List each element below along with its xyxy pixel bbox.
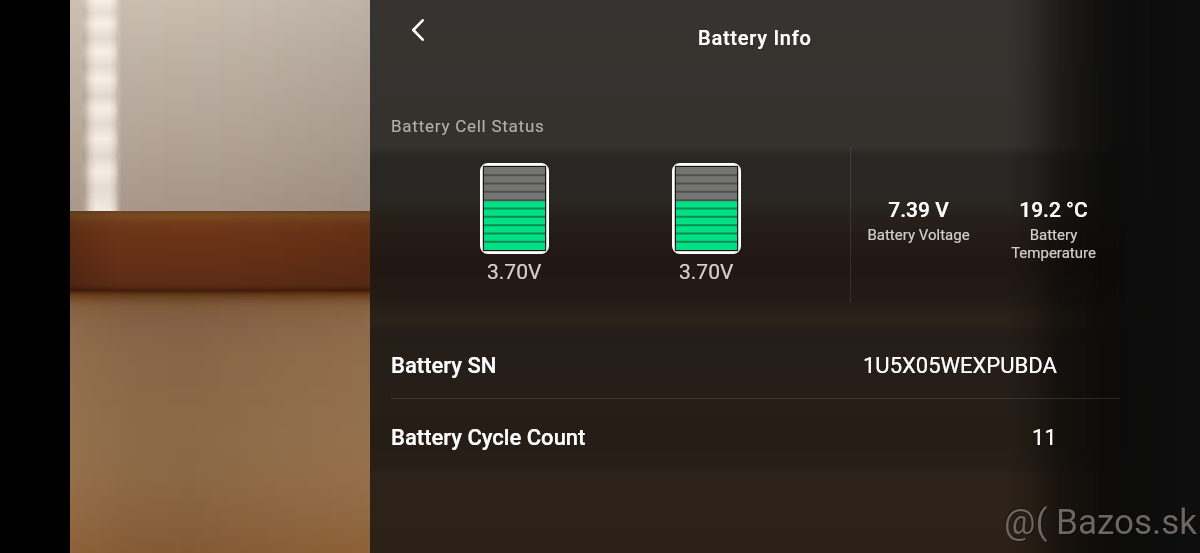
- button[interactable]: Back: [388, 0, 448, 60]
- staticText: 7.39 V: [888, 198, 949, 223]
- staticText: @( Bazos.sk: [1003, 501, 1197, 542]
- staticText: 3.70V: [487, 260, 542, 285]
- staticText: Battery Voltage: [867, 226, 970, 244]
- staticText: 11: [1032, 425, 1057, 451]
- staticText: Battery Temperature: [1011, 226, 1096, 262]
- staticText: @( Bazos.sk: [1005, 503, 1199, 544]
- staticText: Battery Cell Status: [391, 116, 545, 136]
- staticText: @( Bazos.sk: [1004, 502, 1198, 543]
- button[interactable]: Battery Cycle Count: [370, 399, 1120, 470]
- staticText: Battery Cycle Count: [391, 425, 586, 451]
- button[interactable]: Battery SN: [370, 327, 1120, 398]
- staticText: Battery Info: [698, 26, 812, 49]
- staticText: 1U5X05WEXPUBDA: [863, 353, 1057, 379]
- staticText: 3.70V: [679, 260, 734, 285]
- staticText: Battery SN: [391, 353, 497, 379]
- staticText: 19.2 °C: [1019, 198, 1088, 223]
